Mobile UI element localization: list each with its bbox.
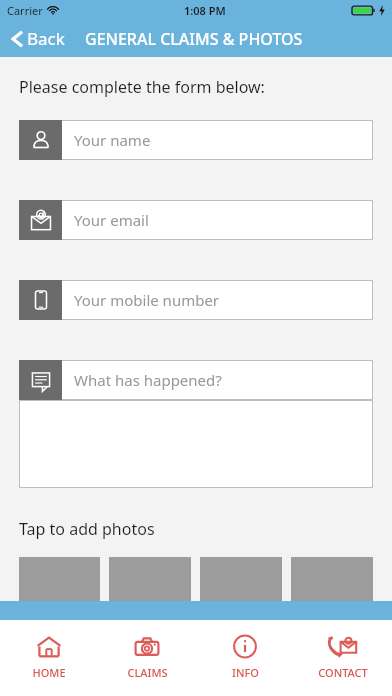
staticText: Tap to add photos: [19, 518, 155, 540]
staticText: Carrier: [7, 3, 43, 18]
staticText: Your email: [74, 210, 149, 230]
button[interactable]: What has happened?: [19, 360, 373, 400]
button[interactable]: HOME: [0, 620, 98, 680]
staticText: Your mobile number: [74, 290, 220, 310]
button[interactable]: Your email: [19, 200, 373, 240]
staticText: Your name: [74, 130, 151, 150]
staticText: GENERAL CLAIMS & PHOTOS: [85, 28, 303, 50]
staticText: INFO: [232, 665, 259, 680]
staticText: HOME: [32, 665, 66, 680]
button[interactable]: Your mobile number: [19, 280, 373, 320]
staticText: CONTACT: [318, 665, 368, 680]
button[interactable]: CONTACT: [294, 620, 392, 680]
button[interactable]: CLAIMS: [98, 620, 196, 680]
staticText: CLAIMS: [127, 665, 168, 680]
staticText: 1:08 PM: [184, 3, 226, 18]
button[interactable]: Back: [8, 23, 69, 54]
staticText: Please complete the form below:: [19, 76, 265, 98]
staticText: Back: [27, 27, 65, 50]
button[interactable]: Your name: [19, 120, 373, 160]
button[interactable]: INFO: [196, 620, 294, 680]
staticText: What has happened?: [74, 370, 222, 390]
